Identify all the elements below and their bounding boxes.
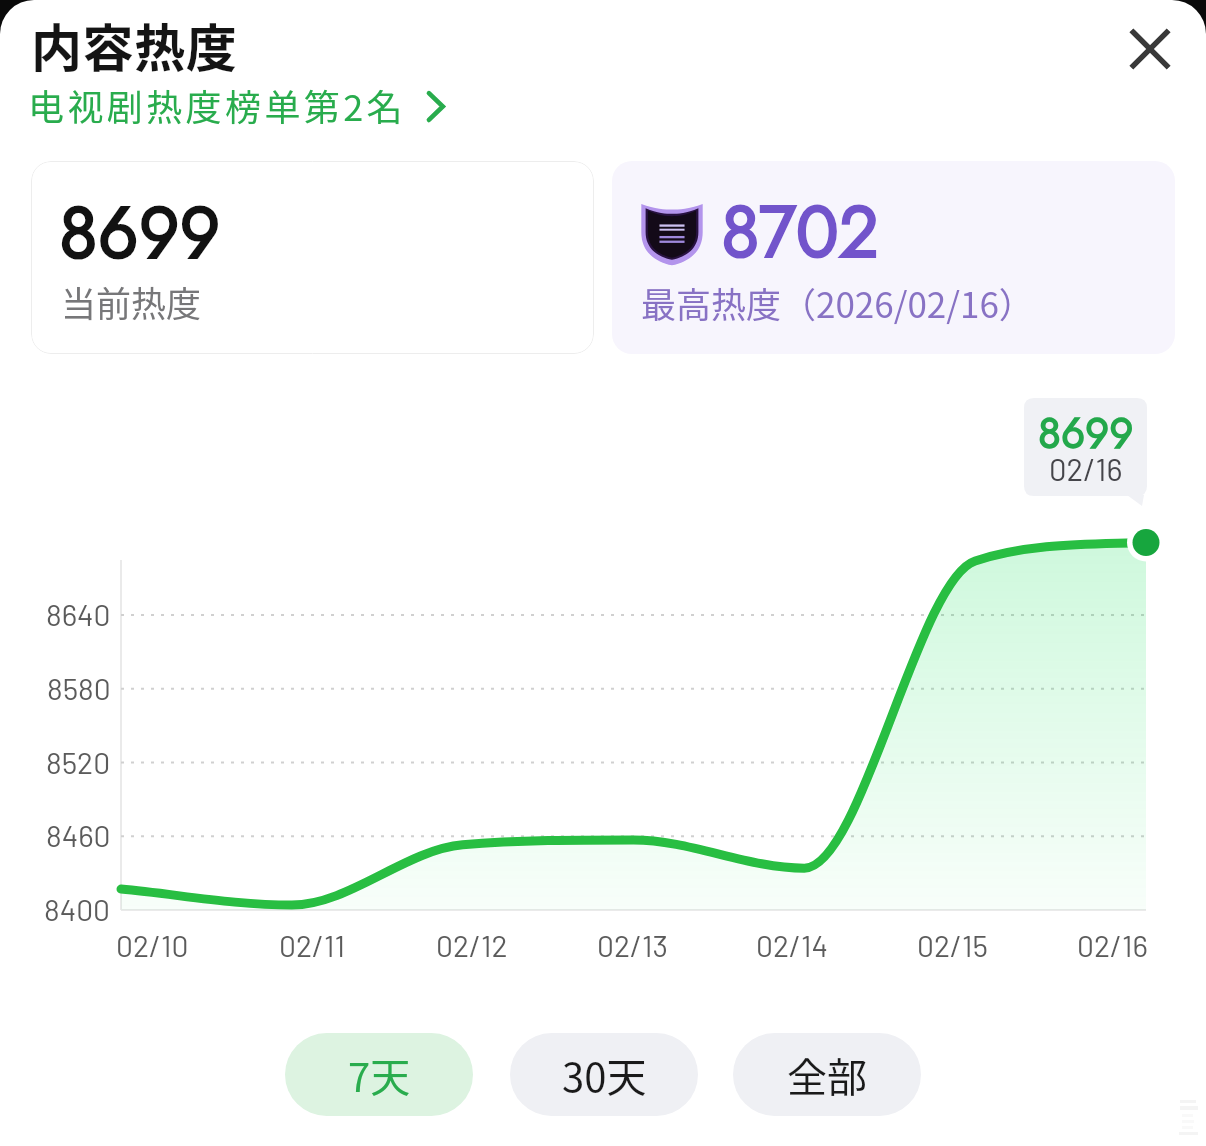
staticText: 电视剧热度榜单第2名 xyxy=(28,79,406,131)
button[interactable]: 8702 xyxy=(612,161,1175,354)
staticText: 02/10 xyxy=(116,927,189,963)
staticText: 8460 xyxy=(46,817,111,853)
staticText: 02/12 xyxy=(436,927,508,963)
button[interactable]: 全部 xyxy=(733,1033,921,1116)
staticText: 最高热度（2026/02/16） xyxy=(641,277,1034,328)
button[interactable]: 7天 xyxy=(285,1033,473,1116)
button[interactable]: 电视剧热度榜单第2名 xyxy=(28,79,450,131)
staticText: 8520 xyxy=(46,744,111,780)
staticText: 8640 xyxy=(46,596,111,632)
staticText: 当前热度 xyxy=(61,276,202,327)
staticText: 8580 xyxy=(47,670,111,706)
staticText: 02/13 xyxy=(597,927,668,963)
button[interactable]: 8699 xyxy=(31,161,594,354)
staticText: 02/16 xyxy=(1049,450,1123,487)
staticText: 8699 xyxy=(1038,403,1134,464)
staticText: 02/15 xyxy=(917,927,988,963)
staticText: 8400 xyxy=(44,891,111,927)
staticText: 7天 xyxy=(348,1046,411,1104)
staticText: 02/14 xyxy=(756,927,829,963)
staticText: 30天 xyxy=(562,1046,647,1104)
staticText: 8702 xyxy=(721,181,879,284)
staticText: 8699 xyxy=(59,182,221,285)
button[interactable]: Close xyxy=(1116,15,1184,83)
staticText: 02/11 xyxy=(279,927,346,963)
button[interactable]: 30天 xyxy=(510,1033,698,1116)
staticText: 内容热度 xyxy=(31,8,238,82)
staticText: 02/16 xyxy=(1077,927,1148,963)
staticText: 全部 xyxy=(787,1046,867,1104)
